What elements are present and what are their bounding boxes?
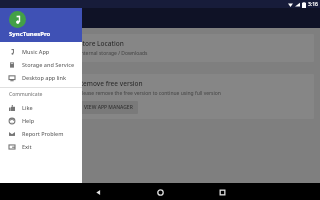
- button[interactable]: Home: [152, 184, 168, 200]
- button[interactable]: Back: [90, 184, 106, 200]
- button[interactable]: Report Problem: [0, 127, 82, 140]
- button[interactable]: Store Location: [6, 34, 314, 62]
- staticText: Store Location: [79, 39, 124, 48]
- staticText: Exit: [22, 143, 32, 150]
- staticText: Like: [22, 104, 33, 111]
- staticText: VIEW APP MANAGER: [84, 104, 133, 111]
- button[interactable]: Remove free version: [6, 74, 314, 119]
- staticText: Report Problem: [22, 130, 64, 137]
- button[interactable]: Recents: [214, 184, 230, 200]
- staticText: Help: [22, 117, 35, 124]
- button[interactable]: VIEW APP MANAGER: [79, 101, 138, 114]
- staticText: SyncTunesPro: [9, 30, 51, 38]
- button[interactable]: Help: [0, 114, 82, 127]
- button[interactable]: Desktop app link: [0, 71, 82, 84]
- staticText: Please remove the free version to contin…: [79, 90, 221, 97]
- staticText: 3:16: [308, 1, 318, 8]
- button[interactable]: Exit: [0, 140, 82, 153]
- staticText: Desktop app link: [22, 74, 67, 81]
- button[interactable]: Music App: [0, 45, 82, 58]
- staticText: Music App: [22, 48, 50, 55]
- staticText: Communicate: [9, 91, 43, 98]
- staticText: Storage and Service: [22, 61, 75, 68]
- button[interactable]: Like: [0, 101, 82, 114]
- staticText: Internal storage / Downloads: [79, 50, 148, 57]
- staticText: Remove free version: [79, 79, 143, 88]
- button[interactable]: Storage and Service: [0, 58, 82, 71]
